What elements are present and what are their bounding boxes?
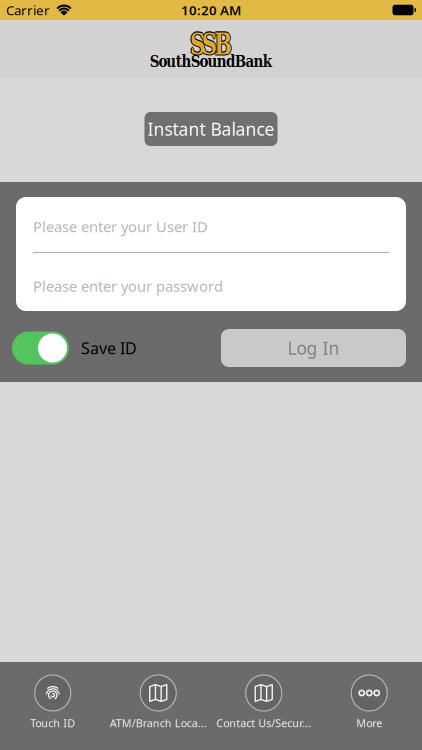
button[interactable]: Touch ID (0, 675, 105, 730)
staticText: SSB (178, 25, 242, 63)
staticText: Please enter your User ID (33, 217, 208, 236)
staticText: SSB (179, 26, 243, 64)
staticText: SSB (179, 25, 243, 63)
staticText: Touch ID (30, 716, 75, 730)
staticText: More (356, 716, 382, 730)
staticText: ATM/Branch Loca... (110, 716, 207, 730)
button[interactable]: More (316, 675, 422, 730)
staticText: SouthSoundBank (126, 50, 296, 72)
button[interactable]: Please enter your password (16, 253, 406, 311)
staticText: Instant Balance (147, 117, 274, 140)
button[interactable]: Contact Us/Secur... (211, 675, 316, 730)
button[interactable]: Instant Balance (144, 112, 277, 146)
staticText: SSB (180, 25, 244, 63)
button[interactable]: Log In (221, 329, 406, 367)
staticText: Log In (287, 336, 339, 359)
staticText: Contact Us/Secur... (216, 716, 311, 730)
button[interactable]: ATM/Branch Loca... (105, 675, 211, 730)
button[interactable]: Save ID (12, 331, 69, 364)
staticText: SSB (179, 24, 243, 62)
staticText: Carrier (6, 1, 50, 19)
staticText: Save ID (81, 337, 137, 359)
staticText: Please enter your password (33, 276, 223, 296)
button[interactable]: Please enter your User ID (16, 197, 406, 252)
staticText: 10:20 AM (181, 1, 241, 19)
